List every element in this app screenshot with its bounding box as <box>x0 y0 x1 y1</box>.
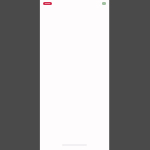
button[interactable]: Battery status <box>102 2 106 5</box>
button[interactable]: Recording in progress <box>43 2 52 5</box>
